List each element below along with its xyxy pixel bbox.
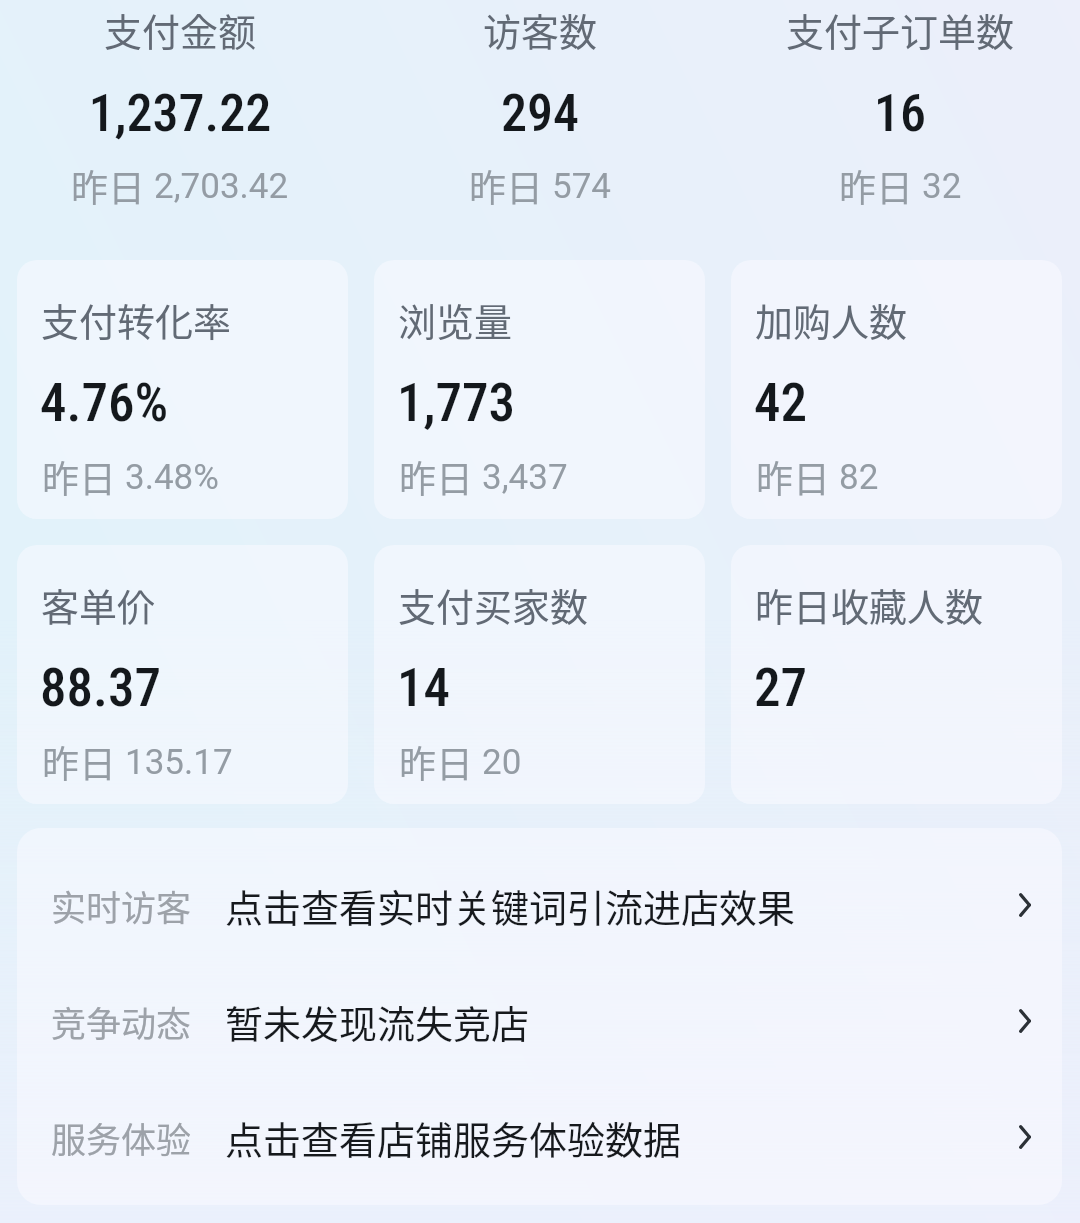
- staticText: 客单价: [41, 577, 156, 632]
- button[interactable]: 支付买家数: [374, 545, 705, 804]
- staticText: 32: [922, 166, 962, 207]
- staticText: 昨日: [469, 159, 552, 213]
- staticText: 暂未发现流失竞店: [225, 994, 530, 1049]
- staticText: 16: [720, 83, 1080, 144]
- staticText: 访客数: [360, 2, 720, 57]
- staticText: 浏览量: [398, 292, 513, 347]
- staticText: 点击查看店铺服务体验数据: [225, 1110, 682, 1165]
- staticText: 14: [397, 657, 451, 719]
- staticText: 点击查看实时关键词引流进店效果: [225, 878, 796, 933]
- staticText: 昨日: [839, 159, 922, 213]
- button[interactable]: 访客数: [360, 0, 720, 61]
- staticText: 支付转化率: [41, 292, 232, 347]
- staticText: 2,703.42: [154, 166, 289, 207]
- staticText: 135.17: [125, 742, 233, 783]
- staticText: 88.37: [40, 657, 162, 719]
- button[interactable]: 加购人数: [731, 260, 1062, 519]
- staticText: 20: [482, 742, 522, 783]
- staticText: 实时访客: [51, 880, 192, 931]
- staticText: 昨日: [399, 735, 482, 789]
- staticText: 昨日: [756, 450, 839, 504]
- button[interactable]: 客单价: [17, 545, 348, 804]
- other: 查看详情: [1019, 893, 1031, 917]
- button[interactable]: 支付金额: [0, 0, 360, 61]
- staticText: 昨日: [71, 159, 154, 213]
- staticText: 支付金额: [0, 2, 360, 57]
- button[interactable]: 服务体验: [17, 1079, 1062, 1195]
- staticText: 27: [754, 657, 808, 719]
- staticText: 加购人数: [755, 292, 908, 347]
- other: 查看详情: [1019, 1125, 1031, 1149]
- staticText: 竞争动态: [51, 996, 192, 1047]
- button[interactable]: 支付转化率: [17, 260, 348, 519]
- staticText: 82: [839, 457, 879, 498]
- staticText: 1,237.22: [0, 83, 360, 144]
- staticText: 昨日: [42, 735, 125, 789]
- staticText: 支付子订单数: [720, 2, 1080, 57]
- other: 查看详情: [1019, 1009, 1031, 1033]
- staticText: 3.48%: [125, 457, 219, 498]
- button[interactable]: 实时访客: [17, 847, 1062, 963]
- staticText: 574: [552, 166, 612, 207]
- staticText: 服务体验: [51, 1112, 192, 1163]
- staticText: 42: [754, 372, 808, 434]
- staticText: 3,437: [482, 457, 568, 498]
- button[interactable]: 支付子订单数: [720, 0, 1080, 61]
- button[interactable]: 竞争动态: [17, 963, 1062, 1079]
- staticText: 1,773: [397, 372, 516, 434]
- button[interactable]: 浏览量: [374, 260, 705, 519]
- staticText: 昨日: [399, 450, 482, 504]
- button[interactable]: 昨日收藏人数: [731, 545, 1062, 804]
- staticText: 昨日: [42, 450, 125, 504]
- staticText: 4.76%: [40, 372, 169, 434]
- staticText: 支付买家数: [398, 577, 589, 632]
- staticText: 294: [360, 83, 720, 144]
- staticText: 昨日收藏人数: [755, 577, 984, 632]
